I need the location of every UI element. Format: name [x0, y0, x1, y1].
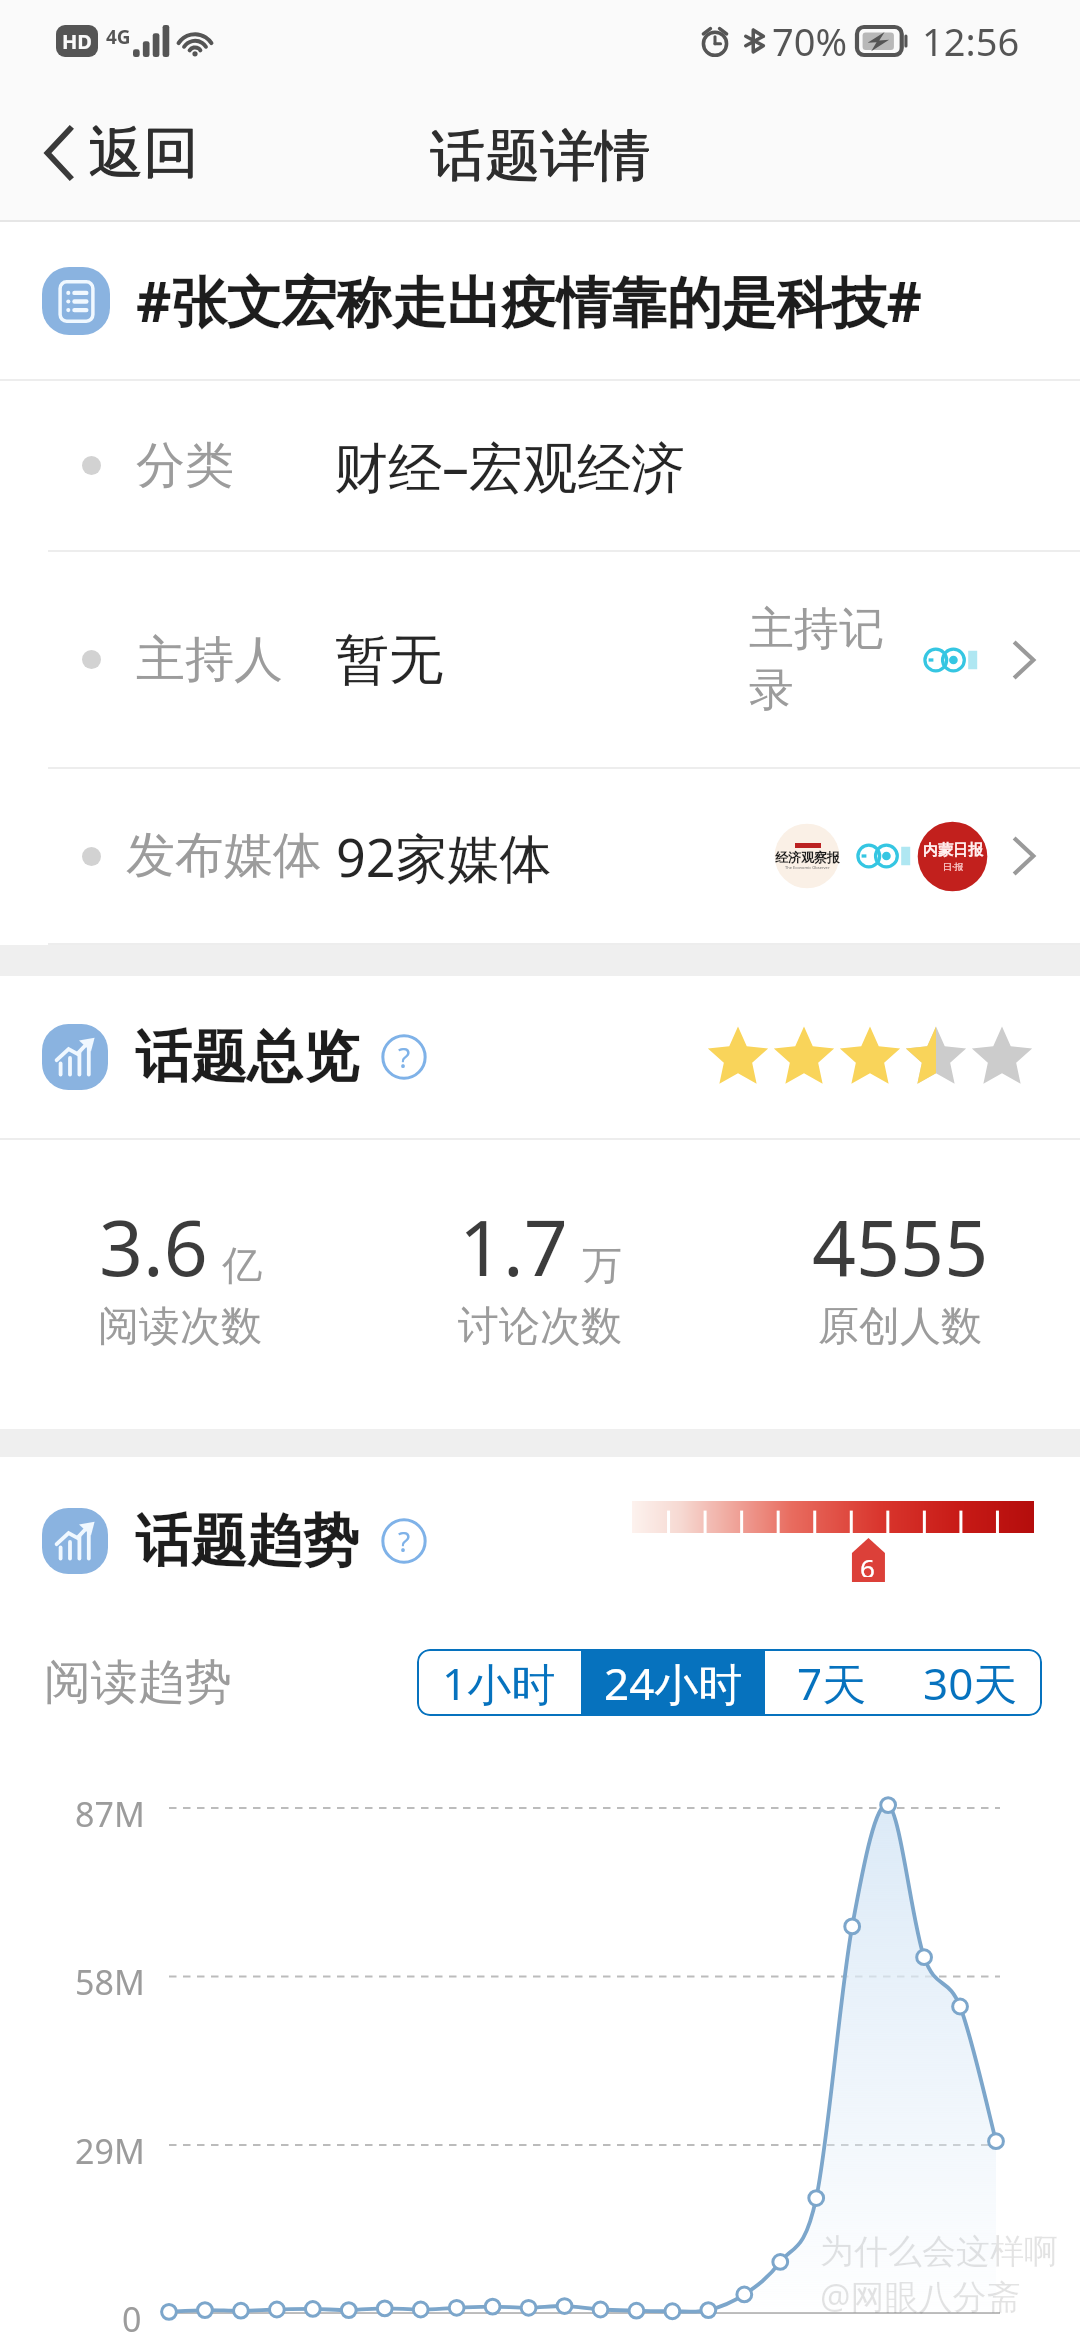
staticText: 话题详情: [430, 122, 650, 191]
staticText: 12:56: [922, 15, 1020, 67]
staticText: 3.6: [99, 1194, 208, 1299]
button[interactable]: 话题趋势: [0, 1457, 1080, 1625]
button[interactable]: 7天: [765, 1649, 898, 1716]
button[interactable]: 分类: [0, 381, 1080, 550]
staticText: 话题详情: [431, 121, 651, 190]
staticText: 7天: [797, 1653, 867, 1713]
staticText: 6: [860, 1550, 875, 1577]
staticText: ?: [398, 1038, 411, 1076]
button[interactable]: 帮助: [381, 1518, 427, 1564]
staticText: @网眼八分斋: [820, 2273, 1021, 2319]
staticText: HD: [62, 28, 92, 55]
staticText: 返回: [88, 118, 198, 187]
staticText: 财经–宏观经济: [334, 429, 685, 503]
staticText: 暂无: [335, 626, 443, 694]
staticText: 内蒙日报: [923, 841, 983, 860]
staticText: The Economic Observer: [785, 865, 830, 870]
staticText: 24小时: [604, 1653, 743, 1713]
staticText: 1.7: [459, 1194, 568, 1299]
staticText: 话题总览: [135, 1022, 359, 1093]
button[interactable]: 发布媒体: [0, 769, 1080, 943]
staticText: 阅读趋势: [44, 1653, 232, 1712]
staticText: 87M: [75, 1791, 145, 1837]
staticText: 分类: [136, 435, 234, 497]
staticText: 亿: [222, 1240, 262, 1290]
button[interactable]: 1小时: [417, 1649, 581, 1716]
staticText: 原创人数: [818, 1301, 982, 1353]
staticText: 70%: [772, 15, 848, 67]
staticText: 讨论次数: [458, 1301, 622, 1353]
button[interactable]: 主持人: [0, 552, 1080, 767]
staticText: 92家媒体: [336, 821, 552, 892]
staticText: 为什么会这样啊: [820, 2230, 1058, 2273]
staticText: 29M: [75, 2128, 145, 2174]
staticText: 话题详情: [430, 121, 650, 190]
staticText: 发布媒体: [126, 825, 322, 887]
staticText: 日·报: [943, 860, 964, 872]
staticText: ?: [398, 1522, 411, 1560]
staticText: 返回: [88, 119, 198, 188]
button[interactable]: 30天: [898, 1649, 1042, 1716]
button[interactable]: 帮助: [381, 1034, 427, 1080]
staticText: 阅读次数: [98, 1301, 262, 1353]
staticText: 经济观察报: [775, 849, 840, 865]
button[interactable]: 24小时: [581, 1649, 765, 1716]
staticText: 30天: [923, 1653, 1018, 1713]
staticText: 万: [582, 1240, 622, 1290]
button[interactable]: 话题总览: [0, 976, 1080, 1138]
staticText: 话题趋势: [135, 1506, 359, 1577]
staticText: 主持记 录: [749, 601, 884, 719]
staticText: 返回: [89, 118, 199, 187]
staticText: 4555: [812, 1194, 989, 1299]
staticText: #张文宏称走出疫情靠的是科技#: [136, 263, 923, 338]
staticText: 4G: [106, 24, 131, 50]
staticText: 主持人: [136, 629, 283, 691]
button[interactable]: 返回: [28, 106, 214, 199]
staticText: 0: [122, 2296, 142, 2340]
staticText: 58M: [75, 1959, 145, 2005]
staticText: 1小时: [442, 1653, 556, 1713]
button[interactable]: #张文宏称走出疫情靠的是科技#: [0, 222, 1080, 379]
